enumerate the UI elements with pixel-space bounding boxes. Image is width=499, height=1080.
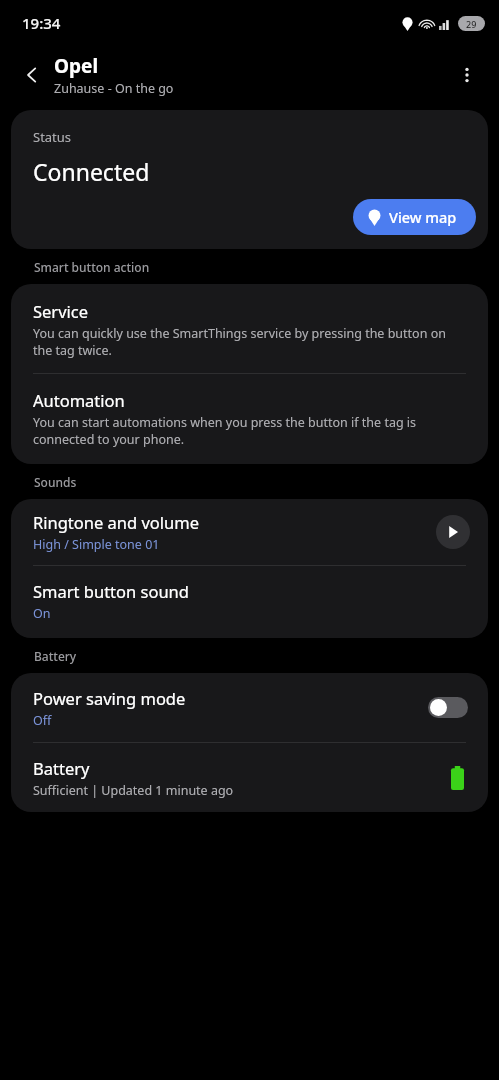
staticText: Status bbox=[33, 128, 72, 146]
staticText: Zuhause - On the go bbox=[54, 80, 174, 97]
staticText: 29 bbox=[466, 18, 477, 30]
button[interactable]: Ringtone and volume bbox=[11, 499, 488, 565]
staticText: Opel bbox=[54, 53, 99, 79]
staticText: Battery bbox=[33, 757, 90, 779]
staticText: Off bbox=[33, 712, 52, 729]
button[interactable]: Play ringtone bbox=[436, 515, 470, 549]
button[interactable]: Back bbox=[12, 55, 52, 95]
staticText: 19:34 bbox=[22, 13, 61, 33]
staticText: View map bbox=[389, 207, 457, 227]
staticText: On bbox=[33, 605, 51, 622]
staticText: Smart button action bbox=[34, 259, 150, 275]
staticText: Power saving mode bbox=[33, 687, 186, 709]
button[interactable]: Battery bbox=[11, 743, 488, 812]
staticText: Sufficient | Updated 1 minute ago bbox=[33, 782, 234, 799]
button[interactable]: Service bbox=[11, 284, 488, 373]
button[interactable]: Power saving mode bbox=[11, 673, 488, 742]
staticText: You can start automations when you press… bbox=[33, 414, 466, 448]
button[interactable]: View map bbox=[353, 199, 476, 235]
staticText: Sounds bbox=[34, 474, 77, 490]
staticText: Battery bbox=[34, 648, 77, 664]
staticText: Automation bbox=[33, 389, 125, 411]
staticText: You can quickly use the SmartThings serv… bbox=[33, 325, 466, 359]
button[interactable]: Power saving mode toggle bbox=[428, 697, 468, 718]
staticText: Service bbox=[33, 300, 89, 322]
staticText: Smart button sound bbox=[33, 580, 189, 602]
staticText: High / Simple tone 01 bbox=[33, 536, 160, 553]
button[interactable]: Automation bbox=[11, 374, 488, 464]
staticText: Ringtone and volume bbox=[33, 511, 200, 533]
button[interactable]: More options bbox=[445, 53, 489, 97]
staticText: Connected bbox=[33, 156, 150, 187]
button[interactable]: Smart button sound bbox=[11, 566, 488, 638]
